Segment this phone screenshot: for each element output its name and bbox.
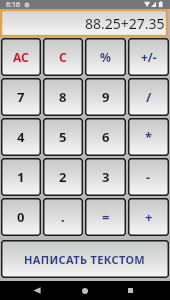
staticText: 7	[17, 88, 25, 106]
staticText: =	[102, 208, 110, 226]
button[interactable]: НАПИСАТЬ ТЕКСТОМ	[1, 240, 169, 278]
staticText: +/-	[141, 49, 157, 65]
staticText: 6	[102, 128, 110, 146]
button[interactable]: 2	[43, 158, 83, 196]
button[interactable]: *	[128, 118, 169, 156]
staticText: %	[100, 49, 111, 65]
staticText: +	[145, 208, 153, 226]
staticText: 1	[17, 168, 25, 186]
button[interactable]: 9	[85, 78, 126, 116]
button[interactable]: 8	[43, 78, 83, 116]
button[interactable]: Recent apps	[95, 281, 170, 300]
staticText: -	[146, 168, 151, 186]
staticText: 6:16	[6, 0, 20, 9]
staticText: .	[61, 208, 65, 226]
button[interactable]: /	[128, 78, 169, 116]
staticText: 3	[102, 168, 110, 186]
button[interactable]: %	[85, 38, 126, 76]
staticText: AC	[13, 49, 29, 65]
button[interactable]: 5	[43, 118, 83, 156]
staticText: /	[146, 88, 152, 106]
button[interactable]: Back	[0, 281, 74, 300]
staticText: 9	[102, 88, 110, 106]
button[interactable]: 3	[85, 158, 126, 196]
staticText: *	[145, 128, 153, 146]
button[interactable]: Home	[74, 281, 95, 300]
button[interactable]: .	[43, 198, 83, 236]
staticText: 88.25+27.35	[85, 14, 165, 33]
staticText: C	[59, 49, 67, 65]
button[interactable]: -	[128, 158, 169, 196]
button[interactable]: 1	[1, 158, 41, 196]
button[interactable]: +/-	[128, 38, 169, 76]
staticText: 8	[59, 88, 67, 106]
button[interactable]: 0	[1, 198, 41, 236]
button[interactable]: C	[43, 38, 83, 76]
button[interactable]: 6	[85, 118, 126, 156]
staticText: 0	[17, 208, 25, 226]
staticText: 4	[17, 128, 25, 146]
button[interactable]: AC	[1, 38, 41, 76]
staticText: НАПИСАТЬ ТЕКСТОМ	[24, 252, 146, 267]
button[interactable]: 4	[1, 118, 41, 156]
button[interactable]: =	[85, 198, 126, 236]
button[interactable]: +	[128, 198, 169, 236]
staticText: 2	[59, 168, 67, 186]
staticText: 5	[59, 128, 67, 146]
button[interactable]: 7	[1, 78, 41, 116]
